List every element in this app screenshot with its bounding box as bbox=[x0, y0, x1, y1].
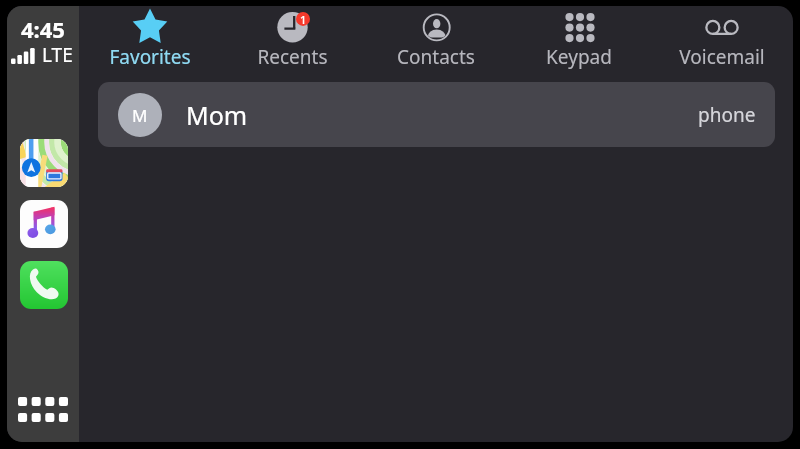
button[interactable]: M bbox=[98, 82, 775, 147]
button[interactable]: Maps bbox=[20, 139, 68, 187]
button[interactable]: 1 bbox=[221, 6, 364, 82]
button[interactable]: Favorites bbox=[79, 6, 221, 82]
staticText: Recents bbox=[257, 44, 328, 70]
staticText: 4:45 bbox=[21, 14, 65, 44]
staticText: 1 bbox=[300, 12, 307, 26]
button[interactable]: Phone bbox=[20, 261, 68, 309]
staticText: Favorites bbox=[109, 44, 191, 70]
staticText: phone bbox=[698, 102, 756, 128]
button[interactable]: Voicemail bbox=[650, 6, 793, 82]
staticText: Contacts bbox=[397, 44, 475, 70]
staticText: LTE bbox=[42, 42, 73, 68]
staticText: M bbox=[132, 104, 148, 127]
button[interactable]: Music bbox=[20, 200, 68, 248]
button[interactable]: Contacts bbox=[364, 6, 507, 82]
button[interactable]: All apps bbox=[18, 397, 68, 422]
button[interactable]: Keypad bbox=[507, 6, 650, 82]
staticText: Keypad bbox=[546, 44, 612, 70]
staticText: Voicemail bbox=[679, 44, 765, 70]
staticText: Mom bbox=[186, 98, 248, 132]
